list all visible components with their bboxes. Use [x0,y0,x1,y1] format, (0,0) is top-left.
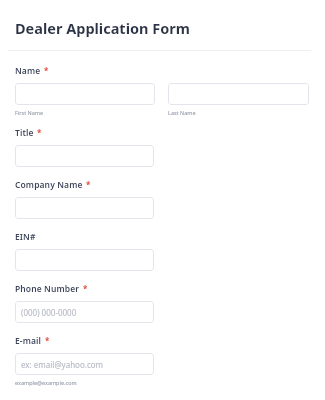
staticText: * [83,283,88,294]
button[interactable]: Company Name [15,197,154,219]
staticText: * [86,179,91,190]
staticText: * [44,65,49,76]
staticText: example@example.com [15,379,77,386]
staticText: Last Name [168,109,196,116]
staticText: Dealer Application Form [15,18,190,38]
button[interactable]: Title [15,145,154,167]
staticText: Title [15,127,34,139]
staticText: (000) 000-0000 [21,307,77,318]
staticText: Phone Number [15,283,80,295]
staticText: First Name [15,109,44,116]
button[interactable]: EIN number [15,249,154,271]
staticText: Name [15,65,41,77]
staticText: * [37,127,42,138]
button[interactable]: E-mail [15,353,154,375]
staticText: EIN# [15,231,36,243]
staticText: ex: email@yahoo.com [21,359,104,370]
button[interactable]: Last Name [168,83,309,105]
staticText: Company Name [15,179,83,191]
button[interactable]: Phone Number [15,301,154,323]
button[interactable]: First Name [15,83,155,105]
staticText: E-mail [15,335,42,347]
staticText: * [45,335,50,346]
